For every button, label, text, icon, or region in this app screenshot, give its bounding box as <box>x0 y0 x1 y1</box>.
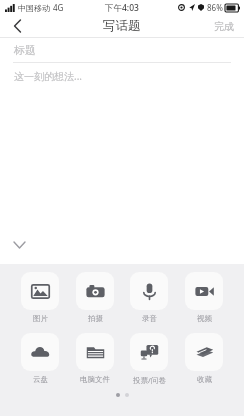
button[interactable]: Poll or survey <box>124 333 174 385</box>
button[interactable]: Computer files <box>70 333 120 384</box>
button[interactable]: Cloud drive <box>15 333 65 384</box>
staticText: 4G <box>53 2 64 13</box>
staticText: 收藏 <box>197 375 212 384</box>
staticText: 86% <box>207 2 223 13</box>
button[interactable]: 完成 <box>204 16 244 37</box>
button[interactable]: Record audio <box>124 272 174 323</box>
staticText: 图片 <box>33 314 48 323</box>
staticText: 电脑文件 <box>80 375 110 384</box>
button[interactable]: Camera <box>70 272 120 323</box>
button[interactable]: Favorites <box>179 333 229 384</box>
button[interactable]: Video <box>179 272 229 323</box>
staticText: 这一刻的想法... <box>14 69 83 83</box>
staticText: 中国移动 <box>18 3 50 13</box>
staticText: 下午4:03 <box>105 2 139 14</box>
button[interactable]: 标题 <box>0 38 244 62</box>
staticText: 拍摄 <box>88 314 103 323</box>
staticText: 视频 <box>197 314 212 323</box>
staticText: 完成 <box>214 20 234 33</box>
staticText: 标题 <box>14 43 36 57</box>
button[interactable]: Image <box>15 272 65 323</box>
button[interactable]: Collapse keyboard <box>6 232 32 258</box>
staticText: 投票/问卷 <box>133 375 166 385</box>
staticText: 云盘 <box>33 375 48 384</box>
staticText: 录音 <box>142 314 157 323</box>
staticText: 写话题 <box>103 18 141 34</box>
button[interactable]: Back <box>0 15 34 37</box>
button[interactable]: 这一刻的想法... <box>0 63 244 89</box>
